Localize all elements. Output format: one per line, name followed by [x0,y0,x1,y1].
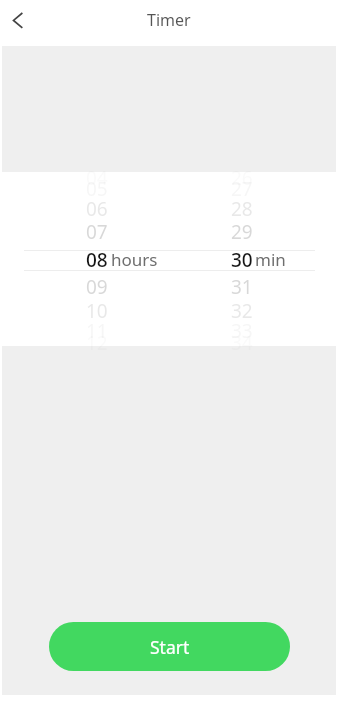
button[interactable] [37,220,157,246]
button[interactable] [182,170,302,183]
button[interactable] [182,220,302,246]
button[interactable] [37,170,157,183]
staticText: 27 [231,176,253,200]
staticText: 29 [231,219,253,243]
button[interactable]: Back [0,0,42,42]
staticText: Start [150,635,190,659]
staticText: 08 [86,247,108,271]
staticText: 34 [231,330,253,354]
staticText: 07 [86,219,108,243]
button[interactable] [182,245,302,273]
staticText: 30 [231,247,253,271]
button[interactable] [182,273,302,299]
staticText: 04 [86,165,108,189]
staticText: 26 [231,165,253,189]
button[interactable] [182,336,302,348]
staticText: 09 [86,274,108,298]
staticText: 10 [86,298,108,322]
staticText: min [255,248,286,271]
staticText: 32 [231,298,253,322]
staticText: 12 [86,330,108,354]
staticText: hours [111,248,158,271]
button[interactable] [37,336,157,348]
button[interactable] [37,273,157,299]
button[interactable] [182,298,302,320]
button[interactable]: Start [49,622,290,671]
button[interactable] [37,198,157,220]
staticText: 06 [86,196,108,220]
button[interactable] [37,245,157,273]
button[interactable] [182,198,302,220]
staticText: 31 [231,274,253,298]
button[interactable] [37,298,157,320]
staticText: 28 [231,196,253,220]
staticText: Timer [147,9,191,31]
staticText: 33 [231,318,253,342]
staticText: 05 [86,176,108,200]
